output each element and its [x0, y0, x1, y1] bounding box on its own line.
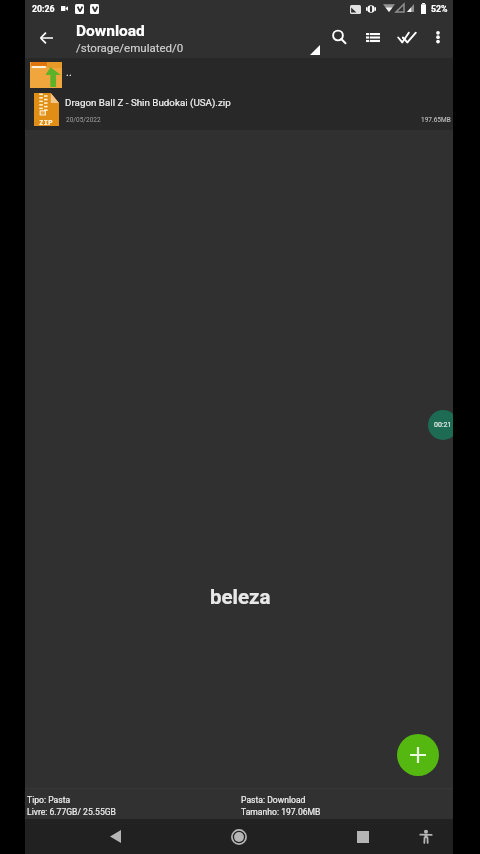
staticText: Download	[76, 22, 145, 40]
staticText: ..	[66, 66, 72, 79]
staticText: ZIP	[39, 117, 53, 127]
staticText: 197.65MB	[421, 116, 451, 124]
staticText: Pasta: Download	[241, 795, 306, 805]
staticText: 20/05/2022	[66, 116, 101, 124]
button[interactable]	[25, 58, 453, 92]
button[interactable]: Back	[98, 819, 132, 854]
staticText: 52%	[431, 4, 448, 14]
button[interactable]: Accessibility	[409, 819, 443, 854]
staticText: Livre: 6.77GB/ 25.55GB	[27, 807, 116, 817]
staticText: beleza	[210, 585, 271, 609]
button[interactable]: Select all	[388, 19, 425, 56]
button[interactable]: Add	[397, 734, 439, 776]
button[interactable]: Back	[28, 19, 65, 56]
staticText: Tipo: Pasta	[27, 795, 71, 805]
button[interactable]: Recent apps	[346, 819, 380, 854]
staticText: /storage/emulated/0	[76, 41, 184, 54]
button[interactable]: Home	[222, 819, 256, 854]
button[interactable]: Search	[323, 22, 360, 59]
staticText: Tamanho: 197.06MB	[241, 807, 321, 817]
button[interactable]	[25, 92, 453, 128]
button[interactable]: More options	[419, 19, 456, 56]
staticText: 20:26	[32, 4, 55, 14]
staticText: 00:21	[434, 421, 452, 429]
staticText: Dragon Ball Z - Shin Budokai (USA).zip	[65, 97, 231, 108]
button[interactable]: List view	[354, 19, 391, 56]
